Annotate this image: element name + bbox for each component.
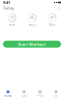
button[interactable]: Profile <box>57 6 61 10</box>
button[interactable]: Home <box>0 88 16 100</box>
staticText: 9:41 <box>3 0 10 5</box>
button[interactable]: Stats <box>16 88 32 100</box>
staticText: 4k <box>30 16 34 19</box>
staticText: Today <box>3 5 14 11</box>
staticText: Move <box>8 23 15 27</box>
button[interactable]: Plan <box>32 88 48 100</box>
staticText: Stats <box>21 94 26 98</box>
staticText: Steps <box>28 23 35 27</box>
button[interactable]: Me <box>48 88 64 100</box>
staticText: Me <box>54 94 58 98</box>
staticText: Mins <box>49 23 55 27</box>
staticText: Start Workout <box>18 41 46 47</box>
staticText: Home <box>4 94 12 98</box>
button[interactable]: Start Workout <box>3 41 61 48</box>
staticText: 30 <box>50 16 54 19</box>
staticText: Plan <box>37 94 43 98</box>
staticText: 72 <box>10 16 14 19</box>
